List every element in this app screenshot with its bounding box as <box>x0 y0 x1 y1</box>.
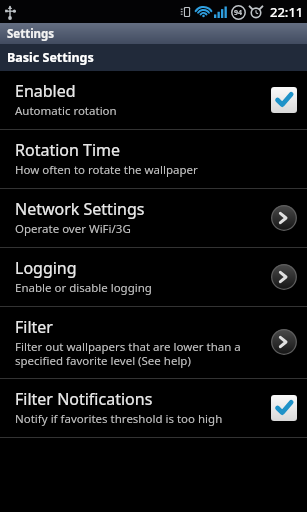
staticText: Enable or disable logging <box>15 280 152 296</box>
button[interactable]: Filter Notifications <box>0 379 307 437</box>
button[interactable]: Open <box>271 329 297 355</box>
button[interactable]: Logging <box>0 248 307 306</box>
staticText: Automatic rotation <box>15 103 117 119</box>
staticText: Logging <box>15 257 77 279</box>
staticText: Notify if favorites threshold is too hig… <box>15 411 223 427</box>
staticText: Filter <box>15 316 53 338</box>
button[interactable]: Enabled <box>0 71 307 129</box>
staticText: 22:11 <box>270 3 304 21</box>
button[interactable]: Settings <box>0 23 307 44</box>
button[interactable]: Filter <box>0 307 307 378</box>
button[interactable]: Network Settings <box>0 189 307 247</box>
button[interactable]: Rotation Time <box>0 130 307 188</box>
staticText: Enabled <box>15 80 76 102</box>
button[interactable]: Open <box>271 264 297 290</box>
staticText: How often to rotate the wallpaper <box>15 162 198 178</box>
button[interactable]: Toggle setting <box>271 395 297 421</box>
staticText: Network Settings <box>15 198 145 220</box>
staticText: Filter Notifications <box>15 388 153 410</box>
staticText: 94 <box>234 8 243 18</box>
button[interactable]: Open <box>271 205 297 231</box>
staticText: Settings <box>7 26 55 42</box>
staticText: Operate over WiFi/3G <box>15 221 131 237</box>
button[interactable]: Toggle setting <box>271 87 297 113</box>
staticText: Filter out wallpapers that are lower tha… <box>15 339 265 368</box>
staticText: Basic Settings <box>7 49 94 66</box>
staticText: Rotation Time <box>15 139 121 161</box>
